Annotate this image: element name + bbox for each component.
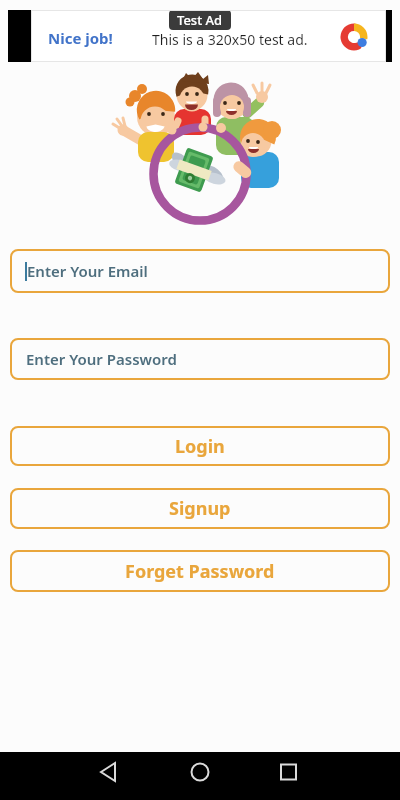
staticText: Forget Password: [125, 559, 275, 584]
button[interactable]: [134, 752, 267, 800]
button[interactable]: Login: [10, 426, 390, 466]
button[interactable]: [0, 752, 134, 800]
button[interactable]: Signup: [10, 488, 390, 529]
button[interactable]: Enter Your Password: [10, 338, 390, 380]
staticText: Login: [175, 434, 225, 459]
staticText: Enter Your Password: [26, 349, 177, 369]
staticText: This is a 320x50 test ad.: [152, 30, 308, 49]
button[interactable]: Forget Password: [10, 550, 390, 592]
button[interactable]: Nice job!: [31, 10, 386, 62]
button[interactable]: Enter Your Email: [10, 249, 390, 293]
button[interactable]: [267, 752, 400, 800]
staticText: Nice job!: [48, 28, 113, 48]
staticText: Test Ad: [177, 11, 223, 29]
staticText: Signup: [169, 496, 231, 521]
staticText: Enter Your Email: [27, 261, 148, 281]
